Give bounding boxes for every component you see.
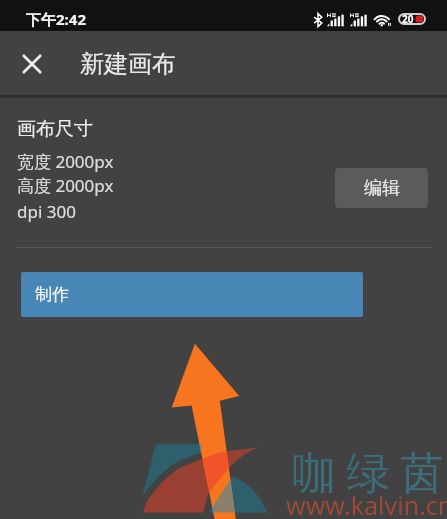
staticText: 编辑 — [364, 177, 400, 200]
button[interactable]: 编辑 — [335, 168, 428, 208]
button[interactable]: Close — [8, 40, 56, 88]
staticText: dpi 300 — [17, 200, 76, 223]
staticText: 下午2:42 — [26, 9, 86, 29]
staticText: 画布尺寸 — [17, 117, 93, 141]
staticText: 制作 — [35, 284, 69, 305]
staticText: 20 — [402, 12, 414, 24]
staticText: 高度 2000px — [17, 174, 114, 197]
staticText: 新建画布 — [80, 49, 176, 79]
button[interactable]: 制作 — [21, 272, 363, 317]
staticText: 咖绿茵 — [287, 446, 447, 501]
staticText: www.kalvin.cn — [286, 488, 447, 519]
staticText: 宽度 2000px — [17, 150, 114, 173]
